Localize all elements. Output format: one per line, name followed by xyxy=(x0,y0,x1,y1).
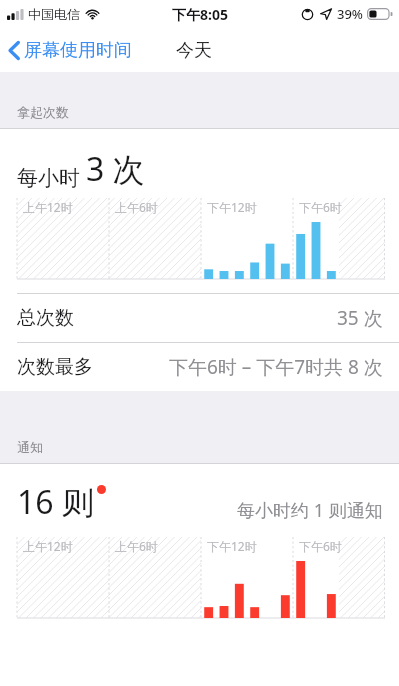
staticText: 下午12时 xyxy=(207,199,257,215)
staticText: 16 则 xyxy=(17,480,94,524)
button[interactable]: 总次数 xyxy=(0,294,399,342)
staticText: 上午12时 xyxy=(23,538,73,554)
staticText: 中国电信 xyxy=(28,6,80,22)
button[interactable]: 次数最多 xyxy=(0,343,399,391)
staticText: 今天 xyxy=(176,39,212,62)
staticText: 上午6时 xyxy=(115,538,158,554)
staticText: 39% xyxy=(337,5,363,23)
staticText: 屏幕使用时间 xyxy=(24,39,132,62)
staticText: 下午8:05 xyxy=(172,5,228,24)
staticText: 总次数 xyxy=(17,306,74,330)
staticText: 每小时约 1 则通知 xyxy=(237,498,383,523)
staticText: 下午6时 xyxy=(299,538,342,554)
staticText: 通知 xyxy=(17,439,43,455)
staticText: 35 次 xyxy=(337,305,383,331)
staticText: 下午6时 xyxy=(299,199,342,215)
staticText: 拿起次数 xyxy=(17,104,69,120)
staticText: 次数最多 xyxy=(17,355,93,379)
staticText: 下午6时 – 下午7时共 8 次 xyxy=(169,354,383,380)
staticText: 下午12时 xyxy=(207,538,257,554)
staticText: 上午12时 xyxy=(23,199,73,215)
staticText: 每小时 xyxy=(17,165,80,191)
button[interactable]: 返回 屏幕使用时间 xyxy=(0,34,140,67)
staticText: 上午6时 xyxy=(115,199,158,215)
staticText: 3 次 xyxy=(86,147,145,191)
